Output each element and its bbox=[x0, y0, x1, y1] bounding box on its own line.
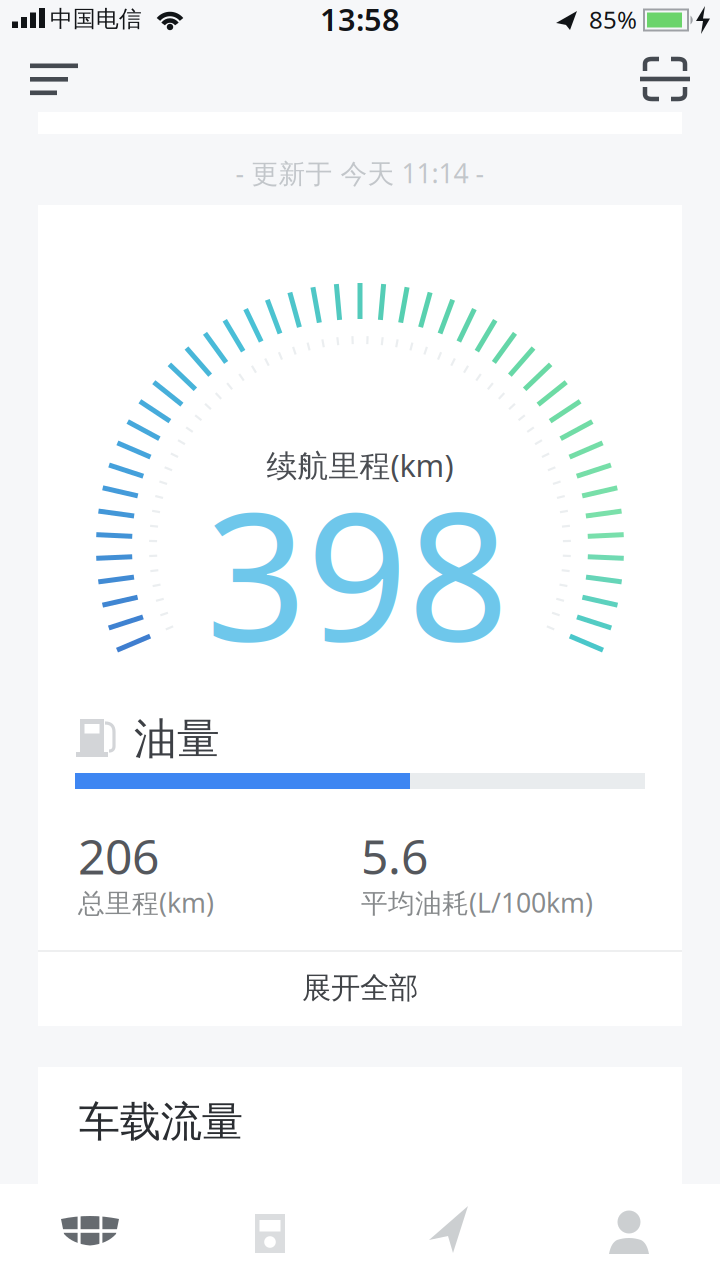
button[interactable]: Profile bbox=[564, 1186, 694, 1280]
staticText: 总里程(km) bbox=[78, 885, 214, 920]
staticText: 续航里程(km) bbox=[266, 445, 453, 485]
staticText: 206 bbox=[78, 824, 159, 888]
staticText: 车载流量 bbox=[79, 1097, 243, 1147]
button[interactable]: Home bbox=[25, 1186, 155, 1280]
button[interactable]: 展开全部 bbox=[38, 951, 682, 1025]
staticText: 398 bbox=[205, 454, 508, 690]
staticText: 5.6 bbox=[361, 824, 428, 888]
staticText: 中国电信 bbox=[50, 5, 142, 33]
staticText: 展开全部 bbox=[302, 970, 418, 1006]
button[interactable]: Remote control bbox=[205, 1186, 335, 1280]
staticText: 13:58 bbox=[320, 0, 400, 39]
staticText: - 更新于 今天 11:14 - bbox=[235, 155, 484, 191]
staticText: 85% bbox=[589, 4, 637, 35]
button[interactable]: Scan bbox=[630, 49, 700, 109]
staticText: 油量 bbox=[134, 713, 220, 765]
staticText: 平均油耗(L/100km) bbox=[361, 885, 593, 920]
button[interactable]: Navigation bbox=[385, 1186, 515, 1280]
button[interactable]: Menu bbox=[22, 50, 92, 110]
